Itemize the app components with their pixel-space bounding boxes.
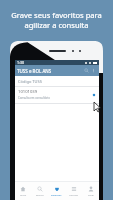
button[interactable]: Buscar [83, 67, 90, 74]
staticText: Código TUSS [18, 79, 42, 84]
staticText: 10101039 [18, 89, 38, 95]
button[interactable]: Mais opções [90, 67, 97, 74]
staticText: 1:30 [17, 60, 24, 65]
button[interactable]: Notícias [65, 182, 82, 200]
staticText: Perfil [88, 193, 94, 196]
staticText: Consulta em consultório [18, 96, 51, 100]
button[interactable]: Favoritos [48, 182, 65, 200]
staticText: Notícias [69, 193, 78, 196]
staticText: TUSS e ROL ANS [17, 68, 52, 74]
button[interactable]: 10101039 [15, 87, 99, 103]
staticText: Início [20, 193, 27, 196]
staticText: Favoritos [51, 193, 62, 196]
button[interactable]: Perfil [82, 182, 99, 200]
staticText: Buscar [36, 193, 44, 196]
button[interactable]: Buscar [31, 182, 48, 200]
staticText: Grave seus favoritos para agilizar a con… [0, 10, 113, 30]
button[interactable]: Início [15, 182, 31, 200]
